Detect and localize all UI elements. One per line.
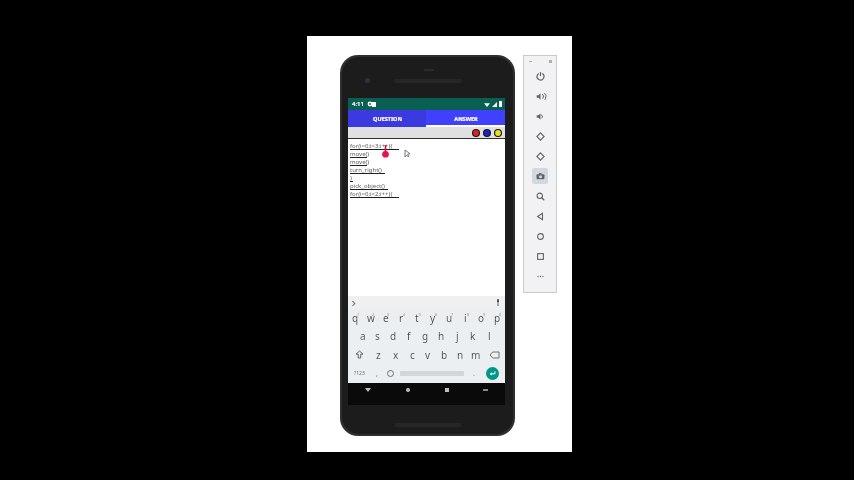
staticText: pick_object() bbox=[350, 182, 385, 190]
button[interactable]: 0 bbox=[489, 309, 505, 327]
button[interactable]: b bbox=[436, 345, 452, 364]
button[interactable]: j bbox=[449, 327, 465, 345]
button[interactable]: Back bbox=[524, 206, 556, 226]
staticText: } bbox=[350, 174, 353, 182]
button[interactable]: 2 bbox=[363, 309, 378, 327]
button[interactable]: Close bbox=[548, 59, 552, 63]
button[interactable]: Rotate right bbox=[524, 146, 556, 166]
button[interactable]: c bbox=[404, 345, 420, 364]
button[interactable]: Emoji bbox=[383, 364, 397, 383]
staticText: 2 bbox=[372, 312, 375, 317]
staticText: u bbox=[446, 311, 453, 325]
button[interactable]: k bbox=[465, 327, 481, 345]
button[interactable]: Space bbox=[397, 369, 467, 378]
button[interactable]: Enter bbox=[486, 367, 499, 380]
button[interactable]: v bbox=[420, 345, 436, 364]
button[interactable]: Expand suggestions bbox=[349, 299, 357, 307]
button[interactable]: Screenshot bbox=[524, 166, 556, 186]
button[interactable]: ?123 bbox=[348, 364, 370, 383]
button[interactable]: Back bbox=[348, 383, 388, 397]
staticText: for(i=0;i<3;i++){ bbox=[350, 142, 393, 150]
button[interactable]: x bbox=[387, 345, 404, 364]
staticText: 3 bbox=[387, 312, 390, 317]
button[interactable]: 9 bbox=[473, 309, 489, 327]
staticText: g bbox=[422, 329, 429, 343]
button[interactable]: Home bbox=[524, 226, 556, 246]
button[interactable]: m bbox=[468, 345, 484, 364]
staticText: m bbox=[471, 348, 481, 362]
button[interactable]: Power bbox=[524, 66, 556, 86]
staticText: QUESTION bbox=[373, 115, 402, 122]
staticText: s bbox=[375, 329, 380, 343]
button[interactable]: for(i=0;i<3;i++){ bbox=[350, 142, 399, 150]
button[interactable]: d bbox=[385, 327, 401, 345]
staticText: move() bbox=[350, 150, 370, 158]
staticText: 7 bbox=[451, 312, 454, 317]
button[interactable]: 5 bbox=[409, 309, 425, 327]
button[interactable]: Overview bbox=[524, 246, 556, 266]
button[interactable]: 1 bbox=[348, 309, 363, 327]
staticText: n bbox=[457, 348, 464, 362]
staticText: x bbox=[393, 348, 399, 362]
staticText: a bbox=[360, 329, 366, 343]
button[interactable]: move() bbox=[350, 158, 370, 166]
button[interactable]: Home bbox=[388, 383, 427, 397]
button[interactable]: for(i=0;i<2;i++){ bbox=[350, 190, 399, 198]
button[interactable]: Recents bbox=[427, 383, 466, 397]
button[interactable]: l bbox=[481, 327, 497, 345]
button[interactable]: Rotate left bbox=[524, 126, 556, 146]
button[interactable]: s bbox=[370, 327, 385, 345]
staticText: w bbox=[367, 311, 375, 325]
button[interactable]: pick_object() bbox=[350, 182, 388, 190]
button[interactable]: Voice input bbox=[493, 298, 502, 307]
button[interactable]: Color option bbox=[472, 129, 480, 137]
staticText: z bbox=[376, 348, 381, 362]
staticText: q bbox=[352, 311, 359, 325]
button[interactable]: Zoom bbox=[524, 186, 556, 206]
button[interactable]: Comma bbox=[370, 364, 383, 383]
button[interactable]: Color option bbox=[494, 129, 502, 137]
staticText: p bbox=[494, 311, 501, 325]
button[interactable]: 8 bbox=[457, 309, 473, 327]
staticText: 4 bbox=[403, 312, 406, 317]
button[interactable]: a bbox=[355, 327, 370, 345]
button[interactable]: 6 bbox=[425, 309, 441, 327]
staticText: b bbox=[441, 348, 448, 362]
button[interactable]: Keyboard toggle bbox=[466, 383, 505, 397]
button[interactable]: n bbox=[452, 345, 468, 364]
staticText: i bbox=[464, 311, 467, 325]
staticText: 0 bbox=[499, 312, 502, 317]
staticText: j bbox=[456, 329, 459, 343]
staticText: move() bbox=[350, 158, 370, 166]
staticText: y bbox=[430, 311, 436, 325]
staticText: 9 bbox=[483, 312, 486, 317]
button[interactable]: Shift bbox=[348, 345, 370, 364]
button[interactable]: ANSWER bbox=[426, 110, 505, 127]
staticText: , bbox=[376, 369, 378, 379]
button[interactable]: h bbox=[433, 327, 449, 345]
staticText: k bbox=[470, 329, 476, 343]
button[interactable]: QUESTION bbox=[348, 110, 426, 127]
button[interactable]: f bbox=[401, 327, 417, 345]
staticText: o bbox=[478, 311, 485, 325]
button[interactable]: Backspace bbox=[484, 345, 505, 364]
button[interactable]: More bbox=[524, 266, 556, 286]
button[interactable]: } bbox=[350, 174, 353, 182]
button[interactable]: move() bbox=[350, 150, 370, 158]
button[interactable]: 7 bbox=[441, 309, 457, 327]
button[interactable]: 3 bbox=[378, 309, 393, 327]
button[interactable]: Volume down bbox=[524, 106, 556, 126]
button[interactable]: Color option bbox=[483, 129, 491, 137]
button[interactable]: g bbox=[417, 327, 433, 345]
staticText: e bbox=[383, 311, 389, 325]
button[interactable]: 4 bbox=[393, 309, 409, 327]
staticText: 5 bbox=[419, 312, 422, 317]
button[interactable]: z bbox=[370, 345, 387, 364]
staticText: 4:11 bbox=[352, 100, 364, 108]
staticText: 8 bbox=[467, 312, 470, 317]
button[interactable]: turn_right() bbox=[350, 166, 385, 174]
button[interactable]: Volume up bbox=[524, 86, 556, 106]
staticText: d bbox=[390, 329, 397, 343]
button[interactable]: Minimize bbox=[528, 59, 532, 63]
button[interactable]: Period bbox=[467, 364, 480, 383]
